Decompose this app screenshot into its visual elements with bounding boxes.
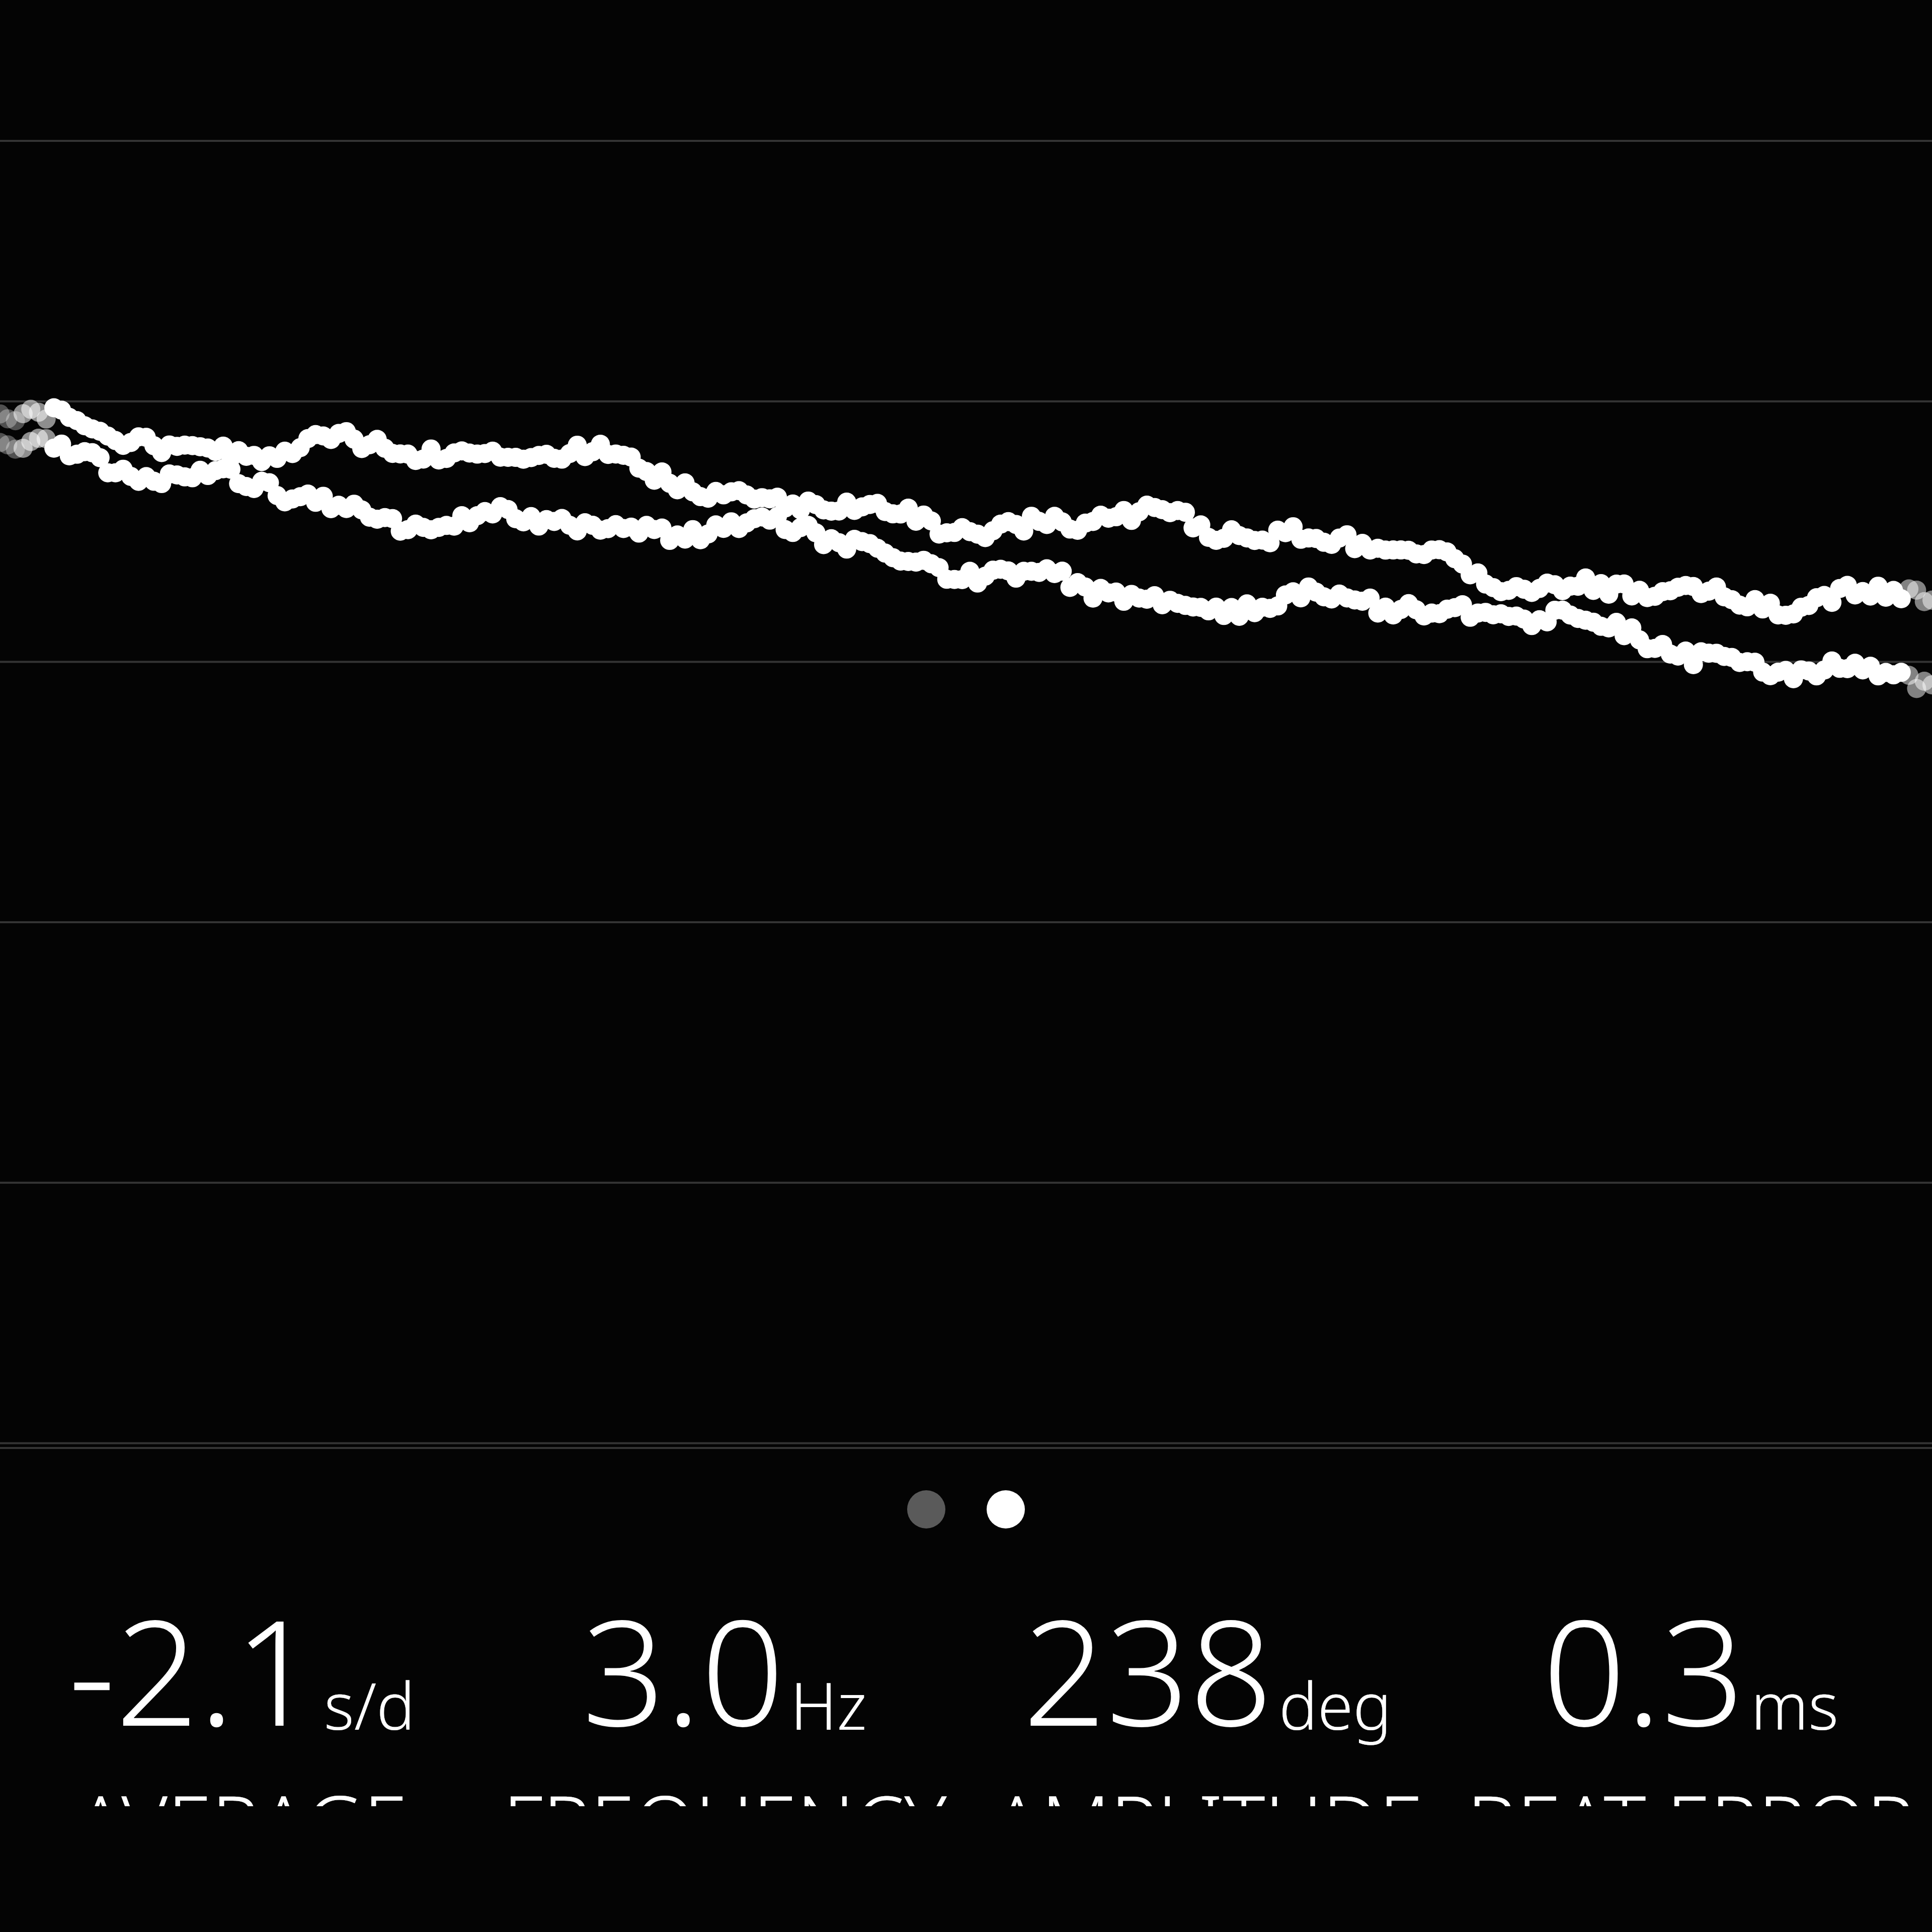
- button[interactable]: -2.1: [0, 1570, 483, 1806]
- staticText: BEAT ERROR: [1467, 1768, 1914, 1806]
- button[interactable]: Timegrapher trace: [0, 0, 1932, 1447]
- staticText: Hz: [790, 1661, 867, 1748]
- staticText: 3.0: [582, 1570, 784, 1768]
- staticText: deg: [1279, 1661, 1392, 1748]
- button[interactable]: Page 2: [987, 1490, 1025, 1528]
- staticText: 0.3: [1543, 1570, 1745, 1768]
- staticText: 238: [1023, 1570, 1273, 1768]
- staticText: ms: [1751, 1661, 1839, 1748]
- staticText: AVERAGE: [76, 1768, 408, 1806]
- staticText: s/d: [324, 1661, 415, 1748]
- button[interactable]: 3.0: [483, 1570, 966, 1806]
- staticText: FREQUENCY: [503, 1768, 947, 1806]
- button[interactable]: 0.3: [1449, 1570, 1932, 1806]
- staticText: -2.1: [68, 1570, 318, 1768]
- button[interactable]: Page 1: [907, 1490, 945, 1528]
- button[interactable]: 238: [966, 1570, 1449, 1806]
- staticText: AMPLITUDE: [993, 1768, 1423, 1806]
